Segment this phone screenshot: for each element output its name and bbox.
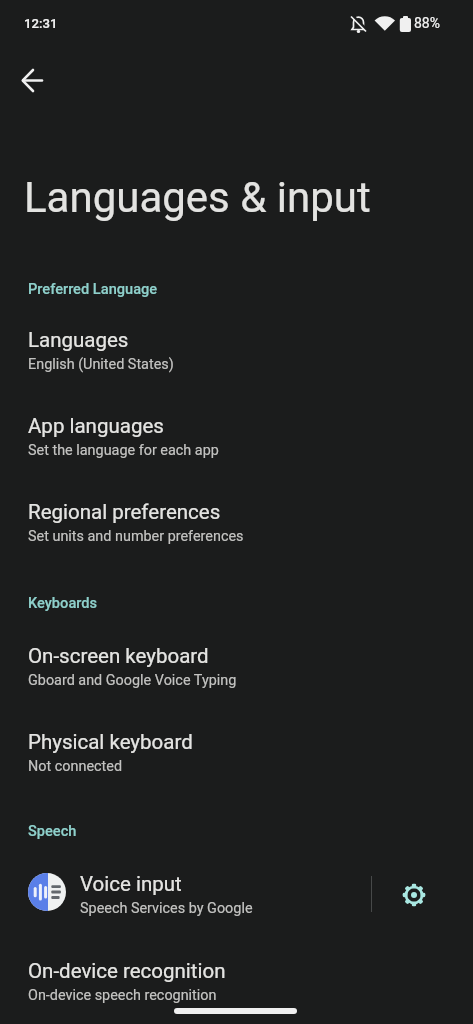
- staticText: 88%: [414, 15, 440, 31]
- staticText: 12:31: [24, 16, 58, 31]
- staticText: App languages: [28, 414, 164, 438]
- staticText: Languages: [28, 328, 129, 352]
- staticText: Speech: [28, 822, 77, 839]
- staticText: Regional preferences: [28, 500, 221, 524]
- staticText: English (United States): [28, 356, 174, 373]
- button[interactable]: [9, 56, 57, 104]
- staticText: Preferred Language: [28, 280, 158, 297]
- staticText: On-screen keyboard: [28, 644, 209, 668]
- button[interactable]: Languages: [0, 314, 473, 382]
- button[interactable]: [390, 871, 438, 919]
- button[interactable]: On-device recognition: [0, 945, 473, 1013]
- button[interactable]: On-screen keyboard: [0, 630, 473, 698]
- button[interactable]: Voice input: [0, 858, 370, 924]
- staticText: On-device speech recognition: [28, 987, 217, 1004]
- staticText: Languages & input: [24, 173, 371, 222]
- button[interactable]: Regional preferences: [0, 486, 473, 554]
- staticText: Gboard and Google Voice Typing: [28, 672, 237, 689]
- staticText: Keyboards: [28, 594, 98, 611]
- staticText: Set units and number preferences: [28, 528, 244, 545]
- staticText: Voice input: [80, 872, 182, 896]
- staticText: On-device recognition: [28, 959, 226, 983]
- staticText: Not connected: [28, 758, 123, 775]
- staticText: Speech Services by Google: [80, 900, 253, 917]
- button[interactable]: App languages: [0, 400, 473, 468]
- staticText: Set the language for each app: [28, 442, 219, 459]
- button[interactable]: Physical keyboard: [0, 716, 473, 784]
- staticText: Physical keyboard: [28, 730, 193, 754]
